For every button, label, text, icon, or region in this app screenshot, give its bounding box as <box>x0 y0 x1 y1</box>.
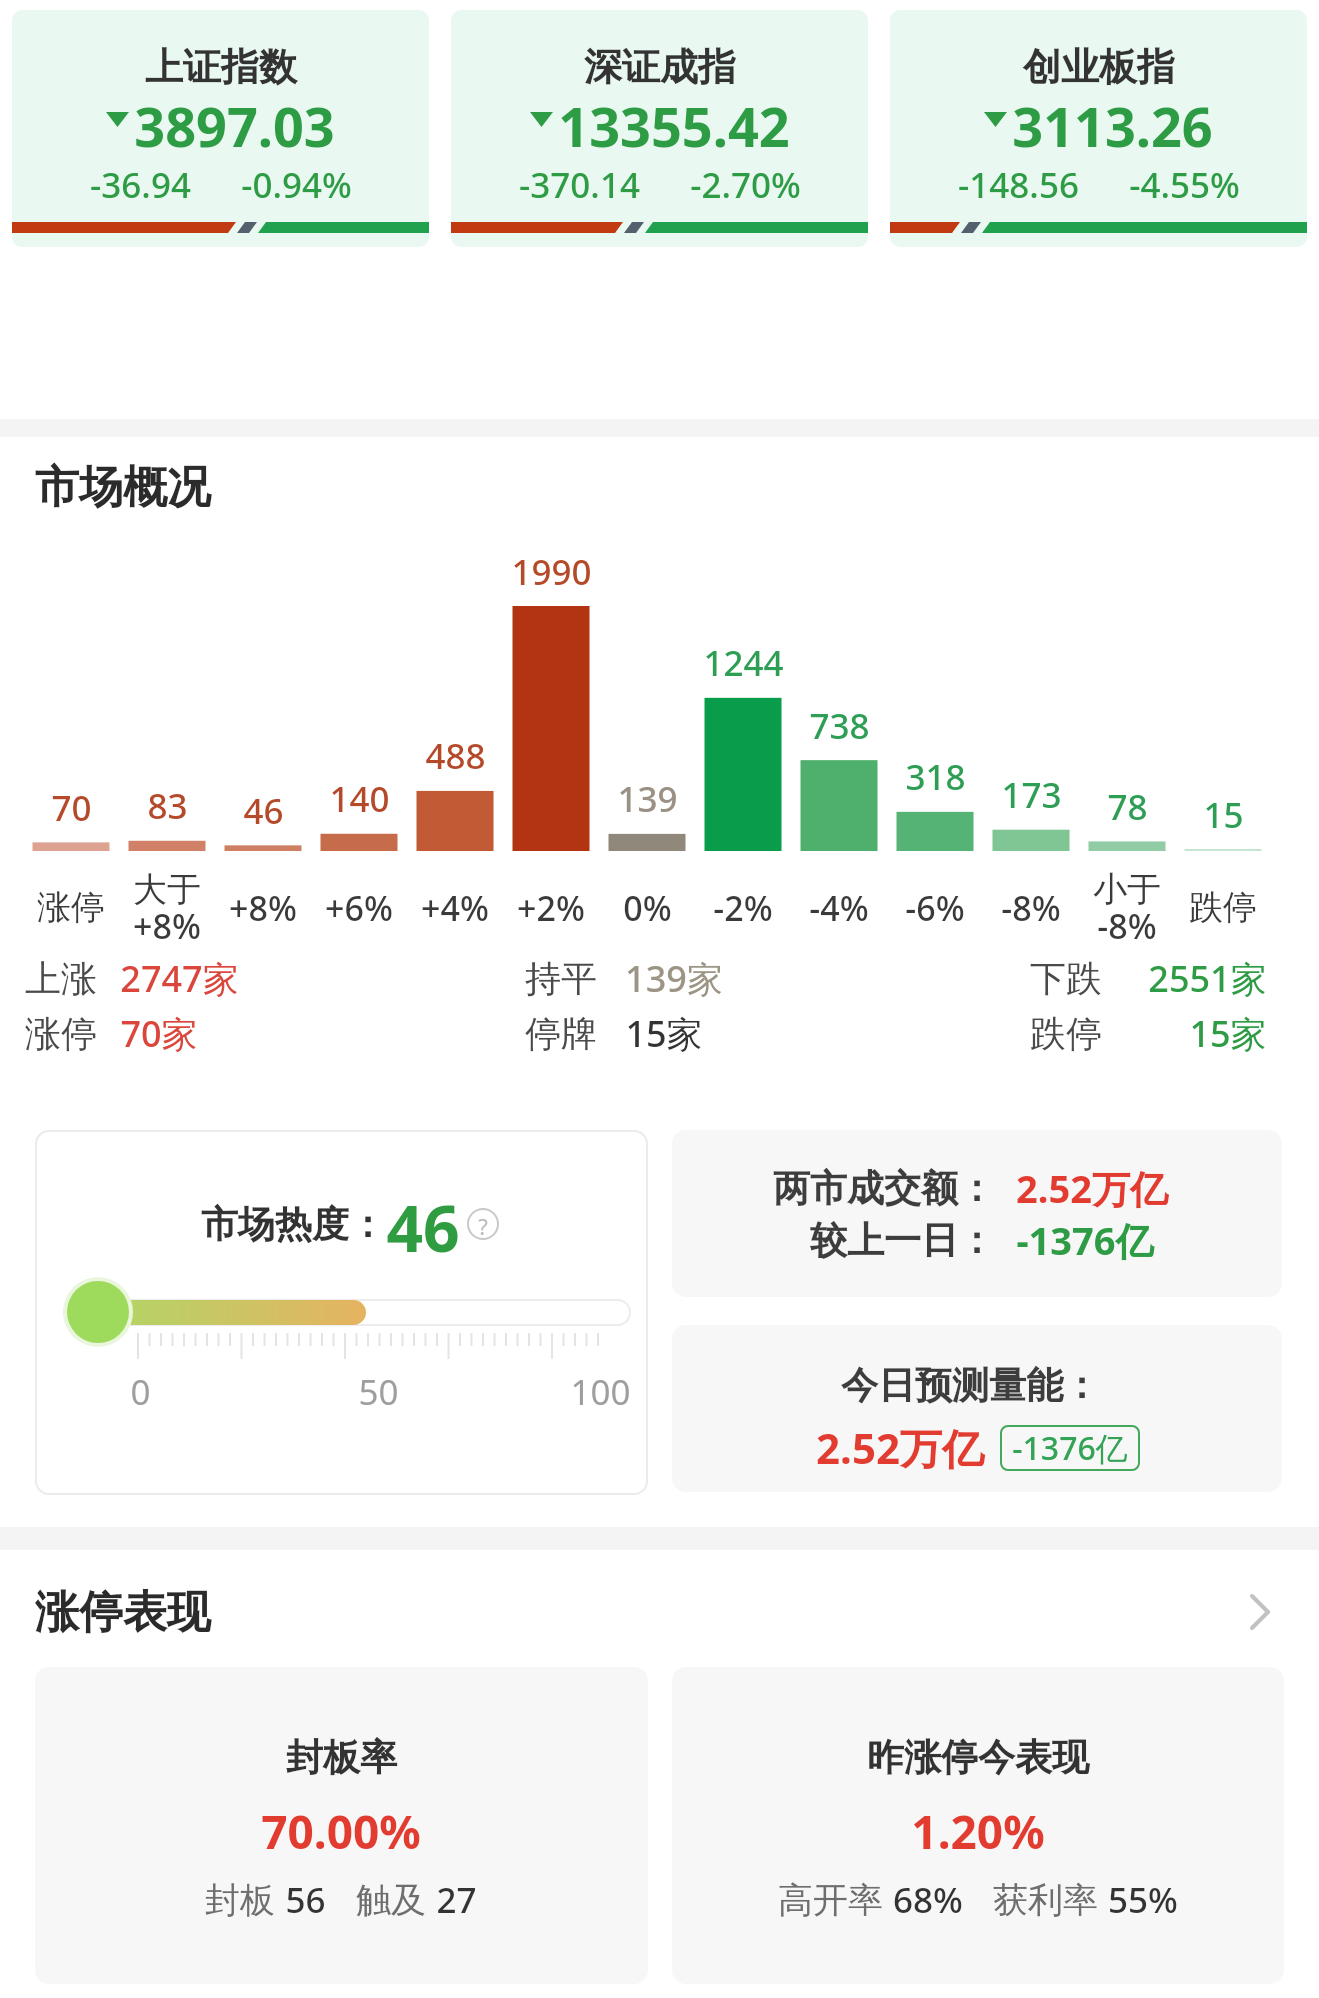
staticText: -1376亿 <box>1016 1214 1154 1266</box>
staticText: 173 <box>1001 771 1062 819</box>
button[interactable]: 创业板指 <box>890 10 1307 247</box>
staticText: +2% <box>517 885 585 929</box>
staticText: 两市成交额： <box>773 1165 995 1212</box>
staticText: 停牌 <box>525 1011 597 1056</box>
staticText: 较上一日： <box>810 1217 995 1264</box>
staticText: 50 <box>358 1368 399 1416</box>
staticText: 下跌 <box>1030 956 1102 1001</box>
staticText: 涨停 <box>25 1011 97 1056</box>
staticText: 68% <box>893 1876 963 1924</box>
staticText: 140 <box>329 775 390 823</box>
staticText: +4% <box>421 885 489 929</box>
staticText: 上证指数 <box>145 43 297 91</box>
button[interactable]: 深证成指 <box>451 10 868 247</box>
staticText: -2.70% <box>690 161 801 209</box>
staticText: -4% <box>809 885 869 929</box>
staticText: -36.94 <box>90 161 191 209</box>
staticText: 大于 <box>133 868 201 911</box>
staticText: -4.55% <box>1129 161 1240 209</box>
staticText: +6% <box>325 885 393 929</box>
staticText: 今日预测量能： <box>841 1362 1100 1409</box>
staticText: 2.52万亿 <box>1016 1162 1168 1214</box>
staticText: 创业板指 <box>1023 43 1175 91</box>
staticText: 3113.26 <box>1012 89 1213 149</box>
staticText: 1.20% <box>911 1800 1045 1863</box>
staticText: 27 <box>436 1876 477 1924</box>
staticText: 1244 <box>703 639 784 687</box>
staticText: 70.00% <box>261 1800 421 1863</box>
staticText: 持平 <box>525 956 597 1001</box>
staticText: 15 <box>1203 791 1244 839</box>
staticText: 13355.42 <box>558 89 790 149</box>
staticText: 高开率 <box>778 1878 883 1922</box>
staticText: 市场热度： <box>201 1201 386 1248</box>
staticText: 跌停 <box>1189 886 1257 929</box>
staticText: 0% <box>623 885 672 929</box>
staticText: 封板率 <box>286 1734 397 1781</box>
staticText: 2747家 <box>120 954 239 1003</box>
staticText: -1376亿 <box>1012 1426 1128 1470</box>
staticText: -370.14 <box>519 161 640 209</box>
staticText: 488 <box>425 732 486 780</box>
staticText: -2% <box>713 885 773 929</box>
staticText: 738 <box>809 702 870 750</box>
staticText: 70家 <box>120 1009 198 1058</box>
staticText: 深证成指 <box>584 43 736 91</box>
staticText: 小于 <box>1093 868 1161 911</box>
staticText: 2551家 <box>1148 954 1267 1003</box>
staticText: 3897.03 <box>134 89 335 149</box>
staticText: 70 <box>51 784 92 832</box>
staticText: 市场概况 <box>35 460 211 515</box>
staticText: 318 <box>905 753 966 801</box>
staticText: 56 <box>285 1876 326 1924</box>
button[interactable] <box>35 1130 648 1495</box>
button[interactable] <box>672 1130 1282 1297</box>
staticText: -148.56 <box>958 161 1079 209</box>
staticText: 15家 <box>1189 1009 1267 1058</box>
staticText: 获利率 <box>993 1878 1098 1922</box>
button[interactable]: 上证指数 <box>12 10 429 247</box>
button[interactable] <box>35 1667 648 1984</box>
staticText: 83 <box>147 782 188 830</box>
staticText: 0 <box>130 1368 151 1416</box>
staticText: 涨停 <box>37 886 105 929</box>
staticText: 昨涨停今表现 <box>867 1734 1089 1781</box>
button[interactable] <box>672 1325 1282 1492</box>
staticText: 78 <box>1107 783 1148 831</box>
staticText: -6% <box>905 885 965 929</box>
staticText: 100 <box>570 1368 631 1416</box>
staticText: 139 <box>617 775 678 823</box>
staticText: -8% <box>1001 885 1061 929</box>
button[interactable] <box>0 1580 1319 1644</box>
staticText: +8% <box>133 903 201 947</box>
staticText: 1990 <box>511 548 592 596</box>
staticText: -8% <box>1097 903 1157 947</box>
staticText: 2.52万亿 <box>816 1419 984 1476</box>
staticText: 触及 <box>356 1878 426 1922</box>
staticText: 涨停表现 <box>35 1585 211 1640</box>
button[interactable] <box>672 1667 1284 1984</box>
staticText: 跌停 <box>1030 1011 1102 1056</box>
staticText: ? <box>478 1211 488 1241</box>
staticText: 46 <box>243 787 284 835</box>
staticText: 55% <box>1108 1876 1178 1924</box>
staticText: 139家 <box>625 954 723 1003</box>
staticText: -0.94% <box>241 161 352 209</box>
staticText: 46 <box>386 1184 460 1264</box>
staticText: 封板 <box>205 1878 275 1922</box>
staticText: 15家 <box>625 1009 703 1058</box>
staticText: 上涨 <box>25 956 97 1001</box>
staticText: +8% <box>229 885 297 929</box>
